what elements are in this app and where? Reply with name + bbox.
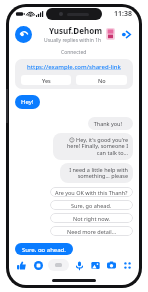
- button[interactable]: Thank you!: [88, 117, 133, 130]
- staticText: Sure, go ahead.: [22, 246, 66, 252]
- button[interactable]: Yes: [21, 75, 71, 85]
- button[interactable]: https://example.com/shared-link: [15, 59, 133, 89]
- staticText: Yusuf.Dehom: [49, 25, 102, 36]
- button[interactable]: [48, 259, 69, 271]
- button[interactable]: Voice message: [73, 259, 85, 271]
- button[interactable]: Not right now.: [50, 213, 133, 223]
- staticText: 😊 Hey, it's good you're here! Finally, s…: [58, 136, 128, 157]
- button[interactable]: More apps: [121, 259, 133, 271]
- button[interactable]: Stickers: [32, 259, 44, 271]
- staticText: Not right now.: [73, 215, 111, 222]
- button[interactable]: Need more detail...: [50, 226, 133, 236]
- staticText: No: [98, 77, 106, 84]
- staticText: Need more detail...: [67, 228, 117, 235]
- button[interactable]: 😊 Hey, it's good you're here! Finally, s…: [53, 133, 133, 160]
- staticText: Sure, go ahead.: [71, 202, 112, 209]
- button[interactable]: Camera: [105, 259, 117, 271]
- staticText: Are you OK with this Thanh?: [55, 189, 128, 196]
- button[interactable]: Photos: [89, 259, 101, 271]
- staticText: Thank you!: [93, 120, 122, 127]
- staticText: Hey!: [21, 98, 34, 106]
- staticText: Connected: [61, 49, 87, 56]
- button[interactable]: No: [76, 75, 127, 85]
- button[interactable]: Sure, go ahead.: [15, 243, 73, 255]
- button[interactable]: Hey!: [15, 95, 40, 109]
- staticText: Usually replies within 1h: [44, 37, 102, 44]
- staticText: I need a little help with something... p…: [65, 166, 128, 180]
- button[interactable]: Sure, go ahead.: [50, 200, 133, 210]
- button[interactable]: Like: [15, 259, 27, 271]
- staticText: https://example.com/shared-link: [27, 63, 121, 71]
- staticText: Yes: [42, 77, 51, 84]
- button[interactable]: More options: [119, 27, 133, 41]
- staticText: 11:38: [114, 9, 132, 19]
- button[interactable]: Are you OK with this Thanh?: [50, 187, 133, 197]
- button[interactable]: I need a little help with something... p…: [60, 163, 133, 183]
- button[interactable]: Sticker: [106, 28, 115, 40]
- button[interactable]: Profile: [15, 26, 32, 43]
